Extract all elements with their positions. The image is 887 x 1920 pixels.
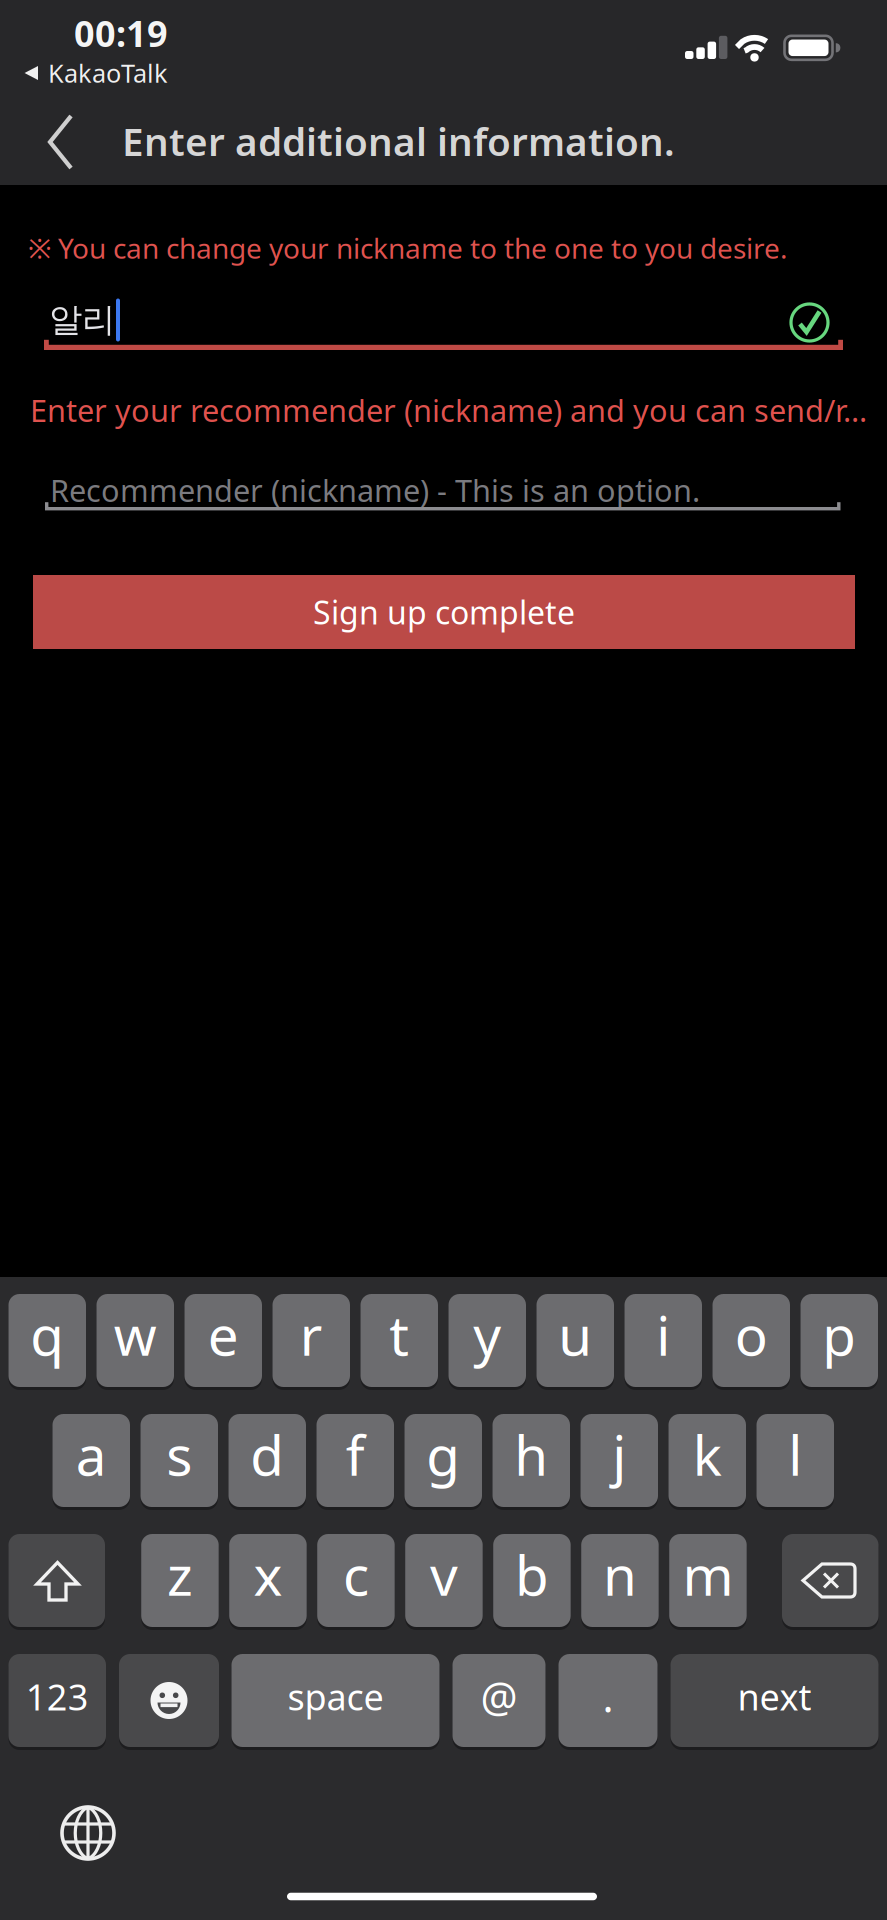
staticText: i: [656, 1298, 670, 1371]
button[interactable]: f: [316, 1414, 394, 1507]
staticText: KakaoTalk: [48, 56, 168, 90]
staticText: v: [430, 1538, 458, 1611]
button[interactable]: d: [228, 1414, 306, 1507]
button[interactable]: u: [536, 1294, 614, 1387]
staticText: 123: [26, 1673, 89, 1720]
staticText: k: [693, 1418, 722, 1491]
staticText: y: [473, 1298, 501, 1371]
button[interactable]: 123: [8, 1654, 106, 1747]
button[interactable]: s: [140, 1414, 218, 1507]
staticText: Sign up complete: [313, 591, 575, 633]
staticText: b: [515, 1538, 549, 1611]
button[interactable]: t: [360, 1294, 438, 1387]
staticText: n: [603, 1538, 637, 1611]
button[interactable]: x: [229, 1534, 307, 1627]
staticText: 알리: [49, 299, 115, 340]
button[interactable]: n: [581, 1534, 659, 1627]
staticText: Recommender (nickname) - This is an opti…: [50, 470, 700, 510]
staticText: t: [389, 1298, 409, 1371]
staticText: h: [514, 1418, 548, 1491]
button[interactable]: Emoji: [119, 1654, 219, 1747]
button[interactable]: k: [668, 1414, 746, 1507]
button[interactable]: a: [52, 1414, 130, 1507]
button[interactable]: q: [8, 1294, 86, 1387]
button[interactable]: KakaoTalk: [23, 56, 263, 90]
staticText: space: [287, 1673, 383, 1720]
button[interactable]: 알리: [44, 294, 844, 350]
button[interactable]: @: [452, 1654, 545, 1747]
button[interactable]: next: [670, 1654, 878, 1747]
button[interactable]: e: [184, 1294, 262, 1387]
staticText: next: [737, 1673, 811, 1720]
button[interactable]: .: [558, 1654, 657, 1747]
button[interactable]: Next keyboard: [58, 1803, 118, 1863]
staticText: u: [558, 1298, 592, 1371]
staticText: o: [735, 1298, 768, 1371]
staticText: a: [76, 1418, 107, 1491]
staticText: j: [612, 1418, 626, 1491]
button[interactable]: g: [404, 1414, 482, 1507]
button[interactable]: Delete: [782, 1534, 878, 1627]
button[interactable]: Shift: [8, 1534, 105, 1627]
staticText: d: [250, 1418, 284, 1491]
staticText: x: [253, 1538, 282, 1611]
staticText: Enter additional information.: [122, 115, 675, 167]
button[interactable]: Back: [46, 114, 76, 170]
staticText: l: [788, 1418, 802, 1491]
staticText: z: [167, 1538, 193, 1611]
staticText: w: [114, 1298, 157, 1371]
staticText: g: [426, 1418, 460, 1491]
staticText: Enter your recommender (nickname) and yo…: [30, 390, 867, 430]
button[interactable]: y: [448, 1294, 526, 1387]
staticText: f: [346, 1418, 365, 1491]
staticText: p: [822, 1298, 856, 1371]
staticText: .: [602, 1669, 613, 1724]
button[interactable]: p: [800, 1294, 878, 1387]
button[interactable]: o: [712, 1294, 790, 1387]
button[interactable]: m: [669, 1534, 747, 1627]
button[interactable]: i: [624, 1294, 702, 1387]
staticText: m: [682, 1538, 733, 1611]
staticText: c: [343, 1538, 369, 1611]
button[interactable]: j: [580, 1414, 658, 1507]
staticText: ※ You can change your nickname to the on…: [28, 229, 788, 267]
button[interactable]: w: [96, 1294, 174, 1387]
button[interactable]: b: [493, 1534, 571, 1627]
button[interactable]: h: [492, 1414, 570, 1507]
staticText: s: [166, 1418, 192, 1491]
staticText: e: [208, 1298, 239, 1371]
button[interactable]: r: [272, 1294, 350, 1387]
button[interactable]: c: [317, 1534, 395, 1627]
button[interactable]: Sign up complete: [33, 575, 855, 649]
button[interactable]: v: [405, 1534, 483, 1627]
staticText: q: [30, 1298, 64, 1371]
button[interactable]: l: [756, 1414, 834, 1507]
button[interactable]: z: [141, 1534, 219, 1627]
staticText: r: [300, 1298, 323, 1371]
button[interactable]: space: [231, 1654, 439, 1747]
staticText: 00:19: [74, 9, 168, 57]
button[interactable]: Recommender (nickname) - This is an opti…: [45, 465, 841, 515]
staticText: @: [480, 1669, 517, 1724]
